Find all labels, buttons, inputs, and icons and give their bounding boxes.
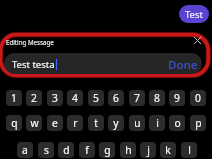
staticText: 3 bbox=[52, 91, 58, 105]
button[interactable]: a bbox=[17, 142, 33, 158]
staticText: p bbox=[195, 116, 202, 130]
staticText: 8 bbox=[154, 91, 160, 105]
button[interactable]: p bbox=[190, 115, 206, 131]
staticText: f bbox=[85, 143, 89, 157]
button[interactable]: 6 bbox=[108, 90, 124, 106]
button[interactable]: 3 bbox=[47, 90, 63, 106]
staticText: 6 bbox=[113, 91, 119, 105]
button[interactable]: k bbox=[160, 142, 176, 158]
button[interactable]: Test bbox=[179, 5, 209, 23]
staticText: e bbox=[52, 116, 58, 130]
button[interactable]: 8 bbox=[149, 90, 165, 106]
button[interactable]: 1 bbox=[6, 90, 22, 106]
button[interactable]: 7 bbox=[129, 90, 145, 106]
staticText: w bbox=[30, 116, 39, 130]
button[interactable]: 9 bbox=[169, 90, 185, 106]
button[interactable]: Test testa bbox=[4, 53, 202, 74]
staticText: y bbox=[113, 116, 119, 130]
button[interactable]: y bbox=[108, 115, 124, 131]
button[interactable]: 5 bbox=[88, 90, 104, 106]
button[interactable]: 0 bbox=[190, 90, 206, 106]
staticText: t bbox=[94, 116, 98, 130]
staticText: d bbox=[63, 143, 70, 157]
staticText: i bbox=[156, 116, 159, 130]
staticText: 1 bbox=[11, 91, 17, 105]
staticText: r bbox=[73, 116, 78, 130]
staticText: Editing Message bbox=[6, 38, 54, 46]
button[interactable]: e bbox=[47, 115, 63, 131]
staticText: 5 bbox=[93, 91, 99, 105]
staticText: a bbox=[22, 143, 28, 157]
staticText: Test bbox=[185, 8, 203, 21]
button[interactable]: f bbox=[79, 142, 95, 158]
staticText: Done bbox=[168, 57, 198, 73]
staticText: j bbox=[147, 143, 150, 157]
button[interactable]: q bbox=[6, 115, 22, 131]
button[interactable]: 4 bbox=[67, 90, 83, 106]
button[interactable]: d bbox=[58, 142, 74, 158]
button[interactable]: s bbox=[38, 142, 54, 158]
button[interactable]: h bbox=[120, 142, 136, 158]
staticText: o bbox=[174, 116, 181, 130]
button[interactable]: u bbox=[129, 115, 145, 131]
staticText: k bbox=[165, 143, 171, 157]
staticText: 2 bbox=[31, 91, 37, 105]
staticText: l bbox=[188, 143, 191, 157]
staticText: 0 bbox=[195, 91, 201, 105]
staticText: s bbox=[44, 143, 49, 157]
staticText: h bbox=[125, 143, 132, 157]
staticText: 9 bbox=[174, 91, 180, 105]
button[interactable]: o bbox=[169, 115, 185, 131]
staticText: u bbox=[134, 116, 141, 130]
staticText: 4 bbox=[72, 91, 78, 105]
button[interactable]: r bbox=[67, 115, 83, 131]
staticText: q bbox=[11, 116, 18, 130]
button[interactable]: Close bbox=[192, 35, 203, 46]
staticText: Test testa bbox=[12, 58, 55, 71]
staticText: g bbox=[104, 143, 111, 157]
button[interactable]: l bbox=[181, 142, 197, 158]
button[interactable]: t bbox=[88, 115, 104, 131]
button[interactable]: 2 bbox=[26, 90, 42, 106]
button[interactable]: g bbox=[99, 142, 115, 158]
button[interactable]: i bbox=[149, 115, 165, 131]
button[interactable]: w bbox=[26, 115, 42, 131]
staticText: 7 bbox=[134, 91, 140, 105]
button[interactable]: j bbox=[140, 142, 156, 158]
